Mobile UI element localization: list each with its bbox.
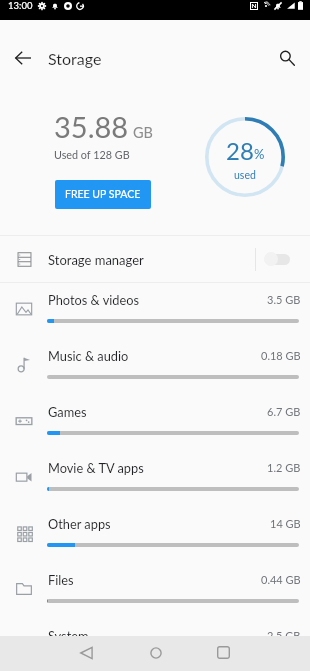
staticText: Storage <box>48 49 102 68</box>
staticText: 14 GB <box>270 517 301 530</box>
staticText: 13:00 <box>8 0 33 11</box>
staticText: GB <box>133 124 153 141</box>
button[interactable]: Storage manager toggle <box>256 236 310 282</box>
staticText: 1.2 GB <box>267 461 301 474</box>
staticText: 0.44 GB <box>261 573 301 586</box>
button[interactable]: Home <box>138 636 173 671</box>
staticText: FREE UP SPACE <box>65 188 141 201</box>
staticText: Files <box>48 572 74 587</box>
staticText: Storage manager <box>48 252 144 268</box>
button[interactable]: Music & audio <box>0 339 310 395</box>
staticText: 28 <box>226 136 254 165</box>
staticText: 35.88 <box>54 109 129 144</box>
button[interactable]: Back <box>69 636 104 671</box>
staticText: 3.5 GB <box>267 293 301 306</box>
staticText: Used of 128 GB <box>54 148 130 161</box>
staticText: 0.18 GB <box>261 349 301 362</box>
button[interactable]: Games <box>0 395 310 451</box>
button[interactable]: FREE UP SPACE <box>55 180 151 209</box>
staticText: Movie & TV apps <box>48 460 144 475</box>
staticText: 2.5 GB <box>267 629 301 642</box>
button[interactable]: Recents <box>206 636 241 671</box>
staticText: Music & audio <box>48 348 129 363</box>
staticText: % <box>254 146 265 162</box>
staticText: used <box>234 169 256 182</box>
button[interactable]: Photos & videos <box>0 283 310 339</box>
button[interactable]: Back <box>0 35 46 81</box>
button[interactable]: Files <box>0 563 310 619</box>
button[interactable]: Search <box>264 35 310 81</box>
staticText: Other apps <box>48 516 111 531</box>
staticText: Photos & videos <box>48 292 140 307</box>
staticText: Games <box>48 404 87 419</box>
staticText: 6.7 GB <box>267 405 301 418</box>
button[interactable]: Movie & TV apps <box>0 451 310 507</box>
staticText: System <box>48 628 89 643</box>
button[interactable]: Storage manager <box>0 236 310 282</box>
button[interactable]: Other apps <box>0 507 310 563</box>
button[interactable]: System <box>0 619 310 671</box>
